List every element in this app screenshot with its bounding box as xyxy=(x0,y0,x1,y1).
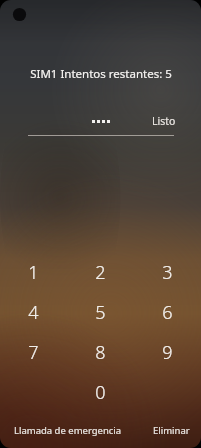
button[interactable]: 6 xyxy=(134,293,201,333)
button[interactable]: 7 xyxy=(0,333,67,373)
button[interactable]: 4 xyxy=(0,293,67,333)
button[interactable]: Llamada de emergencia xyxy=(14,424,122,437)
staticText: Llamada de emergencia xyxy=(14,424,122,437)
staticText: Listo xyxy=(152,114,176,128)
staticText: 1 xyxy=(28,260,39,285)
staticText: 6 xyxy=(162,300,173,325)
staticText: SIM1 Intentos restantes: 5 xyxy=(30,66,172,82)
button[interactable]: Listo xyxy=(152,114,176,128)
staticText: 0 xyxy=(95,380,106,405)
staticText: 8 xyxy=(95,340,106,365)
button[interactable]: Eliminar xyxy=(153,424,190,437)
staticText: 5 xyxy=(95,300,106,325)
staticText: 2 xyxy=(95,260,106,285)
button[interactable]: 5 xyxy=(67,293,134,333)
button[interactable]: 1 xyxy=(0,253,67,293)
staticText: 9 xyxy=(162,340,173,365)
button[interactable]: 0 xyxy=(67,373,134,413)
staticText: 3 xyxy=(162,260,173,285)
button[interactable]: 3 xyxy=(134,253,201,293)
staticText: 7 xyxy=(28,340,39,365)
staticText: Eliminar xyxy=(153,424,190,437)
staticText: 4 xyxy=(28,300,39,325)
button[interactable]: 2 xyxy=(67,253,134,293)
button[interactable]: 8 xyxy=(67,333,134,373)
button[interactable]: 9 xyxy=(134,333,201,373)
